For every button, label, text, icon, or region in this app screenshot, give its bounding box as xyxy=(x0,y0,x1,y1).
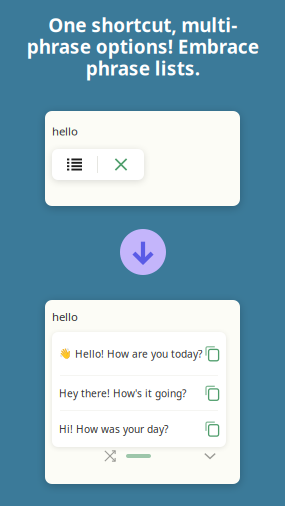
staticText: 👋 xyxy=(59,348,72,359)
button[interactable]: Hi! How was your day? xyxy=(52,411,226,447)
button[interactable]: Collapse xyxy=(198,446,222,466)
button[interactable]: Shuffle xyxy=(98,446,122,466)
button[interactable]: Close xyxy=(98,149,144,180)
staticText: One shortcut, multi-phrase options! Embr… xyxy=(26,14,258,79)
button[interactable]: 👋 xyxy=(52,332,226,375)
staticText: Hi! How was your day? xyxy=(59,422,168,436)
staticText: hello xyxy=(52,123,78,138)
staticText: Hey there! How's it going? xyxy=(59,386,186,400)
button[interactable]: Phrase list xyxy=(52,149,97,180)
button[interactable]: Hey there! How's it going? xyxy=(52,376,226,410)
staticText: hello xyxy=(52,309,78,324)
staticText: Hello! How are you today? xyxy=(75,347,202,360)
